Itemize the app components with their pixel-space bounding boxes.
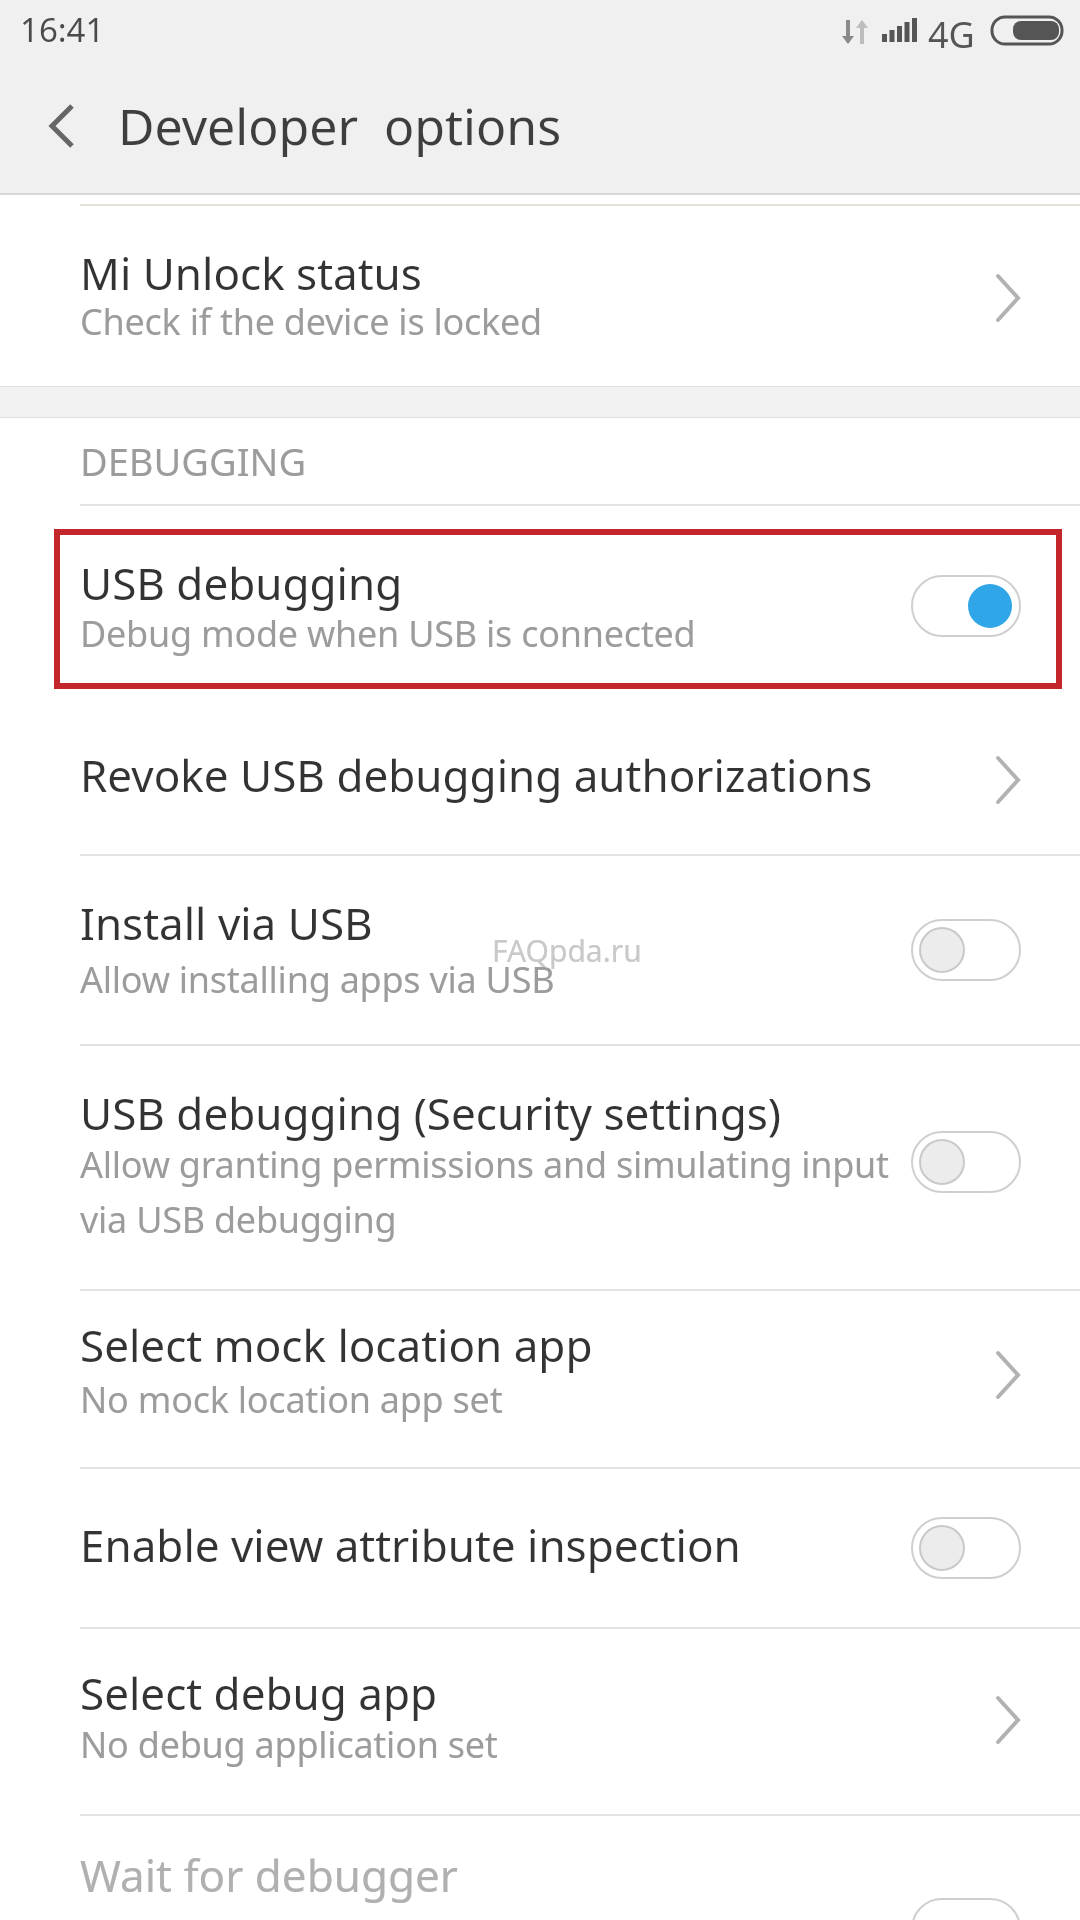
button[interactable] bbox=[0, 1629, 1080, 1815]
staticText: DEBUGGING bbox=[80, 435, 307, 487]
button[interactable] bbox=[911, 575, 1021, 637]
button[interactable] bbox=[911, 1131, 1021, 1193]
button[interactable] bbox=[0, 1291, 1080, 1468]
button[interactable] bbox=[0, 1816, 1080, 1920]
staticText: Select mock location app bbox=[80, 1315, 593, 1375]
staticText: Developer options bbox=[118, 92, 562, 160]
staticText: No mock location app set bbox=[80, 1375, 503, 1424]
button[interactable] bbox=[0, 533, 1080, 685]
staticText: Revoke USB debugging authorizations bbox=[80, 745, 873, 805]
button[interactable] bbox=[0, 690, 1080, 855]
staticText: via USB debugging bbox=[80, 1195, 397, 1244]
staticText: USB debugging bbox=[80, 553, 403, 613]
staticText: 16:41 bbox=[20, 7, 105, 52]
button[interactable] bbox=[911, 1517, 1021, 1579]
button[interactable] bbox=[0, 856, 1080, 1045]
staticText: No debug application set bbox=[80, 1720, 498, 1769]
staticText: 4G bbox=[928, 10, 975, 59]
staticText: Install via USB bbox=[80, 893, 373, 953]
button[interactable] bbox=[911, 919, 1021, 981]
staticText: FAQpda.ru bbox=[492, 930, 642, 971]
button[interactable] bbox=[0, 1469, 1080, 1628]
staticText: Enable view attribute inspection bbox=[80, 1515, 741, 1575]
staticText: Debug mode when USB is connected bbox=[80, 609, 696, 658]
staticText: Mi Unlock status bbox=[80, 243, 422, 303]
staticText: USB debugging (Security settings) bbox=[80, 1083, 781, 1143]
button[interactable] bbox=[0, 206, 1080, 386]
button[interactable] bbox=[0, 1046, 1080, 1290]
staticText: Check if the device is locked bbox=[80, 297, 543, 346]
staticText: Allow installing apps via USB bbox=[80, 955, 555, 1004]
staticText: Select debug app bbox=[80, 1663, 438, 1723]
button[interactable] bbox=[44, 100, 84, 152]
staticText: Wait for debugger bbox=[80, 1845, 459, 1905]
staticText: Allow granting permissions and simulatin… bbox=[80, 1140, 889, 1189]
